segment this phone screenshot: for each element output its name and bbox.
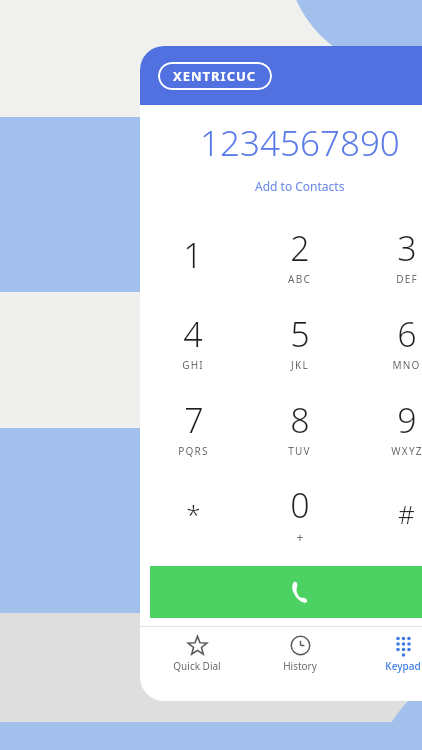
button[interactable]: Quick Dial [151,631,243,677]
staticText: DEF [396,272,418,286]
staticText: GHI [182,358,204,372]
button[interactable]: # [353,470,422,556]
button[interactable]: XENTRICUC [158,62,272,90]
button[interactable]: Keypad [357,631,422,677]
staticText: 4 [183,311,203,357]
button[interactable]: 6 [353,298,422,384]
staticText: History [283,659,317,673]
staticText: 8 [290,397,310,443]
staticText: Add to Contacts [255,178,345,194]
staticText: 1 [183,232,203,278]
button[interactable]: 2 [246,212,353,298]
button[interactable]: Call [150,566,422,618]
staticText: 3 [397,225,417,271]
staticText: Quick Dial [173,659,221,673]
staticText: 5 [290,311,310,357]
staticText: # [398,496,415,531]
button[interactable]: 4 [140,298,246,384]
button[interactable]: 5 [246,298,353,384]
staticText: JKL [291,358,309,372]
staticText: + [296,529,305,545]
staticText: TUV [288,444,311,458]
button[interactable]: 1 [140,212,246,298]
staticText: WXYZ [391,444,422,458]
staticText: ABC [288,272,311,286]
staticText: 2 [290,225,310,271]
button[interactable]: History [254,631,346,677]
button[interactable]: 0 [246,470,353,556]
button[interactable]: * [140,470,246,556]
staticText: 7 [184,397,204,443]
button[interactable]: 3 [353,212,422,298]
staticText: 6 [397,311,417,357]
staticText: * [186,496,201,531]
staticText: 1234567890 [200,119,400,167]
button[interactable]: 7 [140,384,246,470]
staticText: 9 [397,397,417,443]
button[interactable]: 9 [353,384,422,470]
button[interactable]: 8 [246,384,353,470]
staticText: Keypad [385,659,421,673]
button[interactable]: Add to Contacts [249,176,351,196]
staticText: PQRS [178,444,209,458]
staticText: 0 [290,482,310,528]
staticText: XENTRICUC [173,67,257,85]
staticText: MNO [392,358,421,372]
